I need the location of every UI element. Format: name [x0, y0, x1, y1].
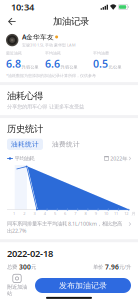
staticText: 1: [13, 211, 15, 216]
staticText: 3: [33, 211, 35, 216]
staticText: 同车系同排量车主平均油耗 8.1L/100km，相比您高出22.7%: [7, 220, 122, 234]
staticText: 4: [44, 211, 46, 216]
staticText: 12: [124, 211, 128, 216]
staticText: 加油记录: [53, 16, 89, 27]
staticText: 6.6: [45, 57, 60, 71]
staticText: 附近加油站: [7, 284, 27, 297]
button[interactable]: A金华车友: [0, 29, 138, 51]
staticText: 10: [104, 211, 108, 216]
staticText: 平均油耗: [14, 155, 34, 162]
staticText: 发布加油记录: [59, 281, 107, 290]
staticText: 元/公里: [108, 64, 121, 70]
staticText: 平均油费: [93, 51, 109, 56]
button[interactable]: 2022年: [104, 155, 131, 162]
staticText: 300: [19, 263, 31, 271]
button[interactable]: 油耗统计: [7, 139, 43, 150]
staticText: 5: [54, 211, 56, 216]
staticText: 7.96: [105, 263, 119, 271]
staticText: 6: [64, 211, 66, 216]
staticText: 最近油耗: [6, 51, 22, 56]
staticText: 6.8: [6, 57, 21, 71]
button[interactable]: 2022-02-18: [0, 242, 138, 275]
staticText: 0.5: [93, 57, 108, 71]
staticText: A金华车友: [22, 32, 54, 41]
staticText: 历史统计: [7, 123, 43, 135]
staticText: 升/百公里: [21, 64, 38, 70]
staticText: 7: [74, 211, 76, 216]
staticText: 2022年: [110, 155, 127, 162]
button[interactable]: 发布加油记录: [35, 278, 131, 293]
staticText: 单价: [93, 264, 105, 270]
staticText: 9: [95, 211, 97, 216]
staticText: 宝骏310 1.5L 手动 豪华型 LAM: [22, 42, 76, 48]
staticText: 平均油耗: [45, 51, 61, 56]
button[interactable]: 油费统计: [48, 139, 84, 150]
staticText: 月: [131, 211, 135, 216]
staticText: 元/升: [119, 263, 131, 271]
staticText: 元: [31, 264, 36, 270]
staticText: 油费统计: [52, 140, 80, 148]
staticText: 10:34: [11, 1, 34, 13]
staticText: 总费: [7, 264, 19, 270]
staticText: 油耗统计: [11, 140, 39, 148]
staticText: 2022-02-18: [7, 247, 53, 260]
staticText: 11: [114, 211, 118, 216]
button[interactable]: 油耗心得: [0, 85, 138, 115]
staticText: 升/百公里: [60, 64, 77, 70]
button[interactable]: 返回: [4, 13, 20, 30]
staticText: 油耗心得: [7, 90, 43, 102]
button[interactable]: 同车系同排量车主平均油耗 8.1L/100km，相比您高出22.7%: [7, 216, 131, 234]
button[interactable]: 附近加油站: [5, 274, 29, 297]
staticText: 8: [84, 211, 86, 216]
staticText: 分享您的用车心得 让更多车友受益: [7, 104, 84, 110]
staticText: *油耗数据为您添加的加油记录计算所得，仅供参考: [6, 73, 96, 78]
staticText: 2: [23, 211, 25, 216]
